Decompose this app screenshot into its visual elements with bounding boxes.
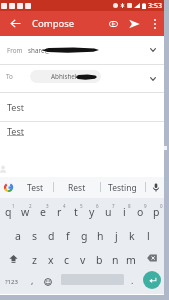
button[interactable]: x xyxy=(43,246,59,270)
staticText: d xyxy=(48,229,55,243)
button[interactable]: b xyxy=(91,246,107,270)
button[interactable]: To xyxy=(0,65,164,92)
staticText: j xyxy=(115,229,118,243)
button[interactable]: Shift xyxy=(0,246,26,270)
staticText: Abhishek xyxy=(51,72,79,81)
button[interactable]: Emoji xyxy=(39,270,57,294)
button[interactable]: Test xyxy=(17,177,53,198)
button[interactable]: Backspace xyxy=(139,246,164,270)
button[interactable]: j xyxy=(108,222,124,246)
staticText: 5 xyxy=(80,203,83,209)
button[interactable]: q xyxy=(0,198,17,222)
button[interactable]: o xyxy=(132,198,148,222)
staticText: z xyxy=(32,253,37,267)
staticText: From xyxy=(7,46,23,55)
staticText: w xyxy=(21,205,30,219)
button[interactable]: From xyxy=(0,36,164,64)
button[interactable]: k xyxy=(124,222,140,246)
staticText: s xyxy=(32,229,38,243)
button[interactable]: w xyxy=(17,198,34,222)
staticText: f xyxy=(66,229,70,243)
staticText: l xyxy=(147,229,150,243)
staticText: o xyxy=(137,205,144,219)
button[interactable]: Abhishek xyxy=(30,70,101,83)
staticText: p xyxy=(153,205,160,219)
button[interactable]: ?123 xyxy=(0,270,23,294)
button[interactable]: r xyxy=(51,198,68,222)
staticText: 1 xyxy=(12,203,15,209)
staticText: g xyxy=(81,229,88,243)
staticText: 2 xyxy=(29,203,32,209)
staticText: y xyxy=(89,205,95,219)
button[interactable]: p xyxy=(148,198,164,222)
button[interactable]: g xyxy=(76,222,92,246)
staticText: x xyxy=(48,253,54,267)
button[interactable]: . xyxy=(124,270,140,294)
staticText: share@ xyxy=(28,46,51,55)
staticText: 3 xyxy=(46,203,49,209)
staticText: . xyxy=(131,274,134,286)
staticText: Test xyxy=(7,125,25,137)
button[interactable]: Test xyxy=(0,122,164,177)
staticText: u xyxy=(105,205,112,219)
button[interactable]: Voice input xyxy=(146,177,165,198)
button[interactable]: m xyxy=(123,246,139,270)
button[interactable]: s xyxy=(26,222,43,246)
button[interactable]: Send xyxy=(124,13,145,34)
button[interactable]: Test xyxy=(0,93,164,121)
staticText: 7 xyxy=(112,203,115,209)
button[interactable]: f xyxy=(60,222,76,246)
staticText: 8 xyxy=(128,203,131,209)
button[interactable]: Enter xyxy=(143,271,161,289)
button[interactable]: a xyxy=(9,222,26,246)
button[interactable]: y xyxy=(84,198,100,222)
button[interactable]: d xyxy=(43,222,60,246)
staticText: t xyxy=(74,205,78,219)
staticText: , xyxy=(31,274,34,286)
staticText: r xyxy=(57,205,62,219)
button[interactable]: t xyxy=(68,198,84,222)
button[interactable]: i xyxy=(116,198,132,222)
button[interactable]: Attach file xyxy=(103,13,124,34)
button[interactable]: Expand xyxy=(144,69,162,89)
staticText: Rest xyxy=(68,182,86,194)
button[interactable]: l xyxy=(140,222,156,246)
staticText: h xyxy=(97,229,104,243)
staticText: e xyxy=(40,205,46,219)
button[interactable]: c xyxy=(59,246,75,270)
button[interactable]: Rest xyxy=(53,177,100,198)
staticText: i xyxy=(123,205,126,219)
staticText: 6 xyxy=(96,203,99,209)
button[interactable]: Expand xyxy=(144,40,162,60)
staticText: m xyxy=(126,253,136,267)
button[interactable]: e xyxy=(34,198,51,222)
staticText: b xyxy=(96,253,103,267)
button[interactable]: Google xyxy=(0,177,17,198)
button[interactable]: More options xyxy=(145,14,164,33)
staticText: v xyxy=(80,253,86,267)
button[interactable]: h xyxy=(92,222,108,246)
button[interactable]: , xyxy=(23,270,41,294)
button[interactable]: Back xyxy=(0,11,30,36)
staticText: 3:53 xyxy=(148,1,162,11)
staticText: Compose xyxy=(32,17,75,30)
staticText: Test xyxy=(27,182,44,194)
staticText: a xyxy=(15,229,21,243)
button[interactable]: n xyxy=(107,246,123,270)
staticText: 9 xyxy=(144,203,147,209)
button[interactable]: z xyxy=(26,246,43,270)
button[interactable]: Testing xyxy=(100,177,145,198)
staticText: q xyxy=(5,205,12,219)
staticText: Test xyxy=(7,101,25,113)
staticText: n xyxy=(112,253,119,267)
staticText: 0 xyxy=(160,203,163,209)
button[interactable]: v xyxy=(75,246,91,270)
staticText: k xyxy=(129,229,135,243)
staticText: 4 xyxy=(63,203,66,209)
staticText: ?123 xyxy=(5,278,18,286)
staticText: To xyxy=(6,72,13,81)
button[interactable]: u xyxy=(100,198,116,222)
staticText: Testing xyxy=(108,182,137,194)
staticText: c xyxy=(64,253,70,267)
